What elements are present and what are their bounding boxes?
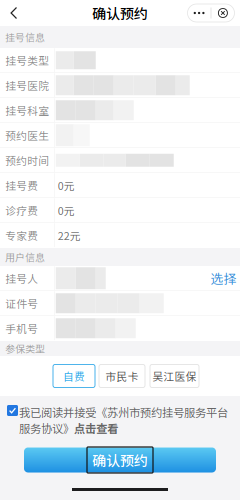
staticText: 挂号人 [5,270,38,286]
button[interactable]: 自费 [53,364,95,387]
staticText: 确认预约 [92,3,148,23]
staticText: 参保类型 [5,341,45,356]
staticText: 选择 [211,269,237,287]
staticText: 手机号 [5,320,38,336]
staticText: 专家费 [5,227,38,243]
staticText: 预约时间 [5,152,49,168]
staticText: 用户信息 [5,250,45,264]
button[interactable]: 吴江医保 [150,364,199,387]
staticText: 自费 [63,368,85,384]
button[interactable]: 确认预约 [0,447,240,473]
staticText: 0元 [58,177,75,193]
button[interactable]: 市民卡 [99,364,145,387]
staticText: 确认预约 [92,450,148,470]
staticText: 挂号费 [5,177,38,193]
staticText: 挂号医院 [5,77,49,93]
staticText: 0元 [58,202,75,218]
staticText: 诊疗费 [5,202,38,218]
staticText: 22元 [58,227,81,243]
staticText: 挂号类型 [5,52,49,68]
button[interactable]: 同意服务协议 [6,404,19,417]
staticText: 证件号 [5,295,38,311]
button[interactable]: 返回 [0,0,28,26]
button[interactable]: 选择 [209,266,239,290]
staticText: 吴江医保 [152,368,196,384]
staticText: 市民卡 [105,368,138,384]
staticText: 我已阅读并接受《苏州市预约挂号服务平台服务协议》点击查看 [19,404,228,436]
staticText: 挂号科室 [5,102,49,118]
staticText: 挂号信息 [5,30,45,44]
staticText: 预约医生 [5,127,49,143]
button[interactable]: 更多 [182,0,240,26]
